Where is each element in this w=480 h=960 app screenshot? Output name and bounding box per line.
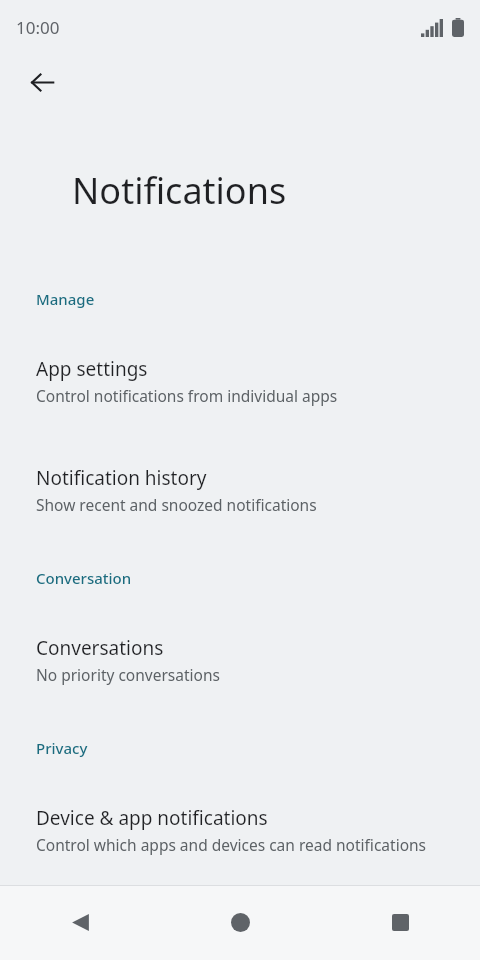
staticText: 10:00 [16,16,60,39]
staticText: Manage [36,289,480,309]
staticText: Conversation [36,568,480,588]
staticText: Notification history [36,465,207,491]
staticText: Control notifications from individual ap… [36,385,338,406]
staticText: App settings [36,356,148,382]
button[interactable]: Home [160,885,320,960]
button[interactable]: Notification history [0,408,480,517]
button[interactable]: Back [14,54,70,110]
staticText: Conversations [36,635,164,661]
button[interactable]: Device & app notifications [0,758,480,857]
button[interactable]: App settings [0,309,480,408]
staticText: Show recent and snoozed notifications [36,494,317,515]
button[interactable]: Back [0,885,160,960]
staticText: Notifications [72,166,287,215]
button[interactable]: Recent apps [320,885,480,960]
staticText: No priority conversations [36,664,220,685]
staticText: Device & app notifications [36,805,268,831]
staticText: Privacy [36,738,480,758]
staticText: Control which apps and devices can read … [36,834,427,855]
button[interactable]: Conversations [0,588,480,687]
